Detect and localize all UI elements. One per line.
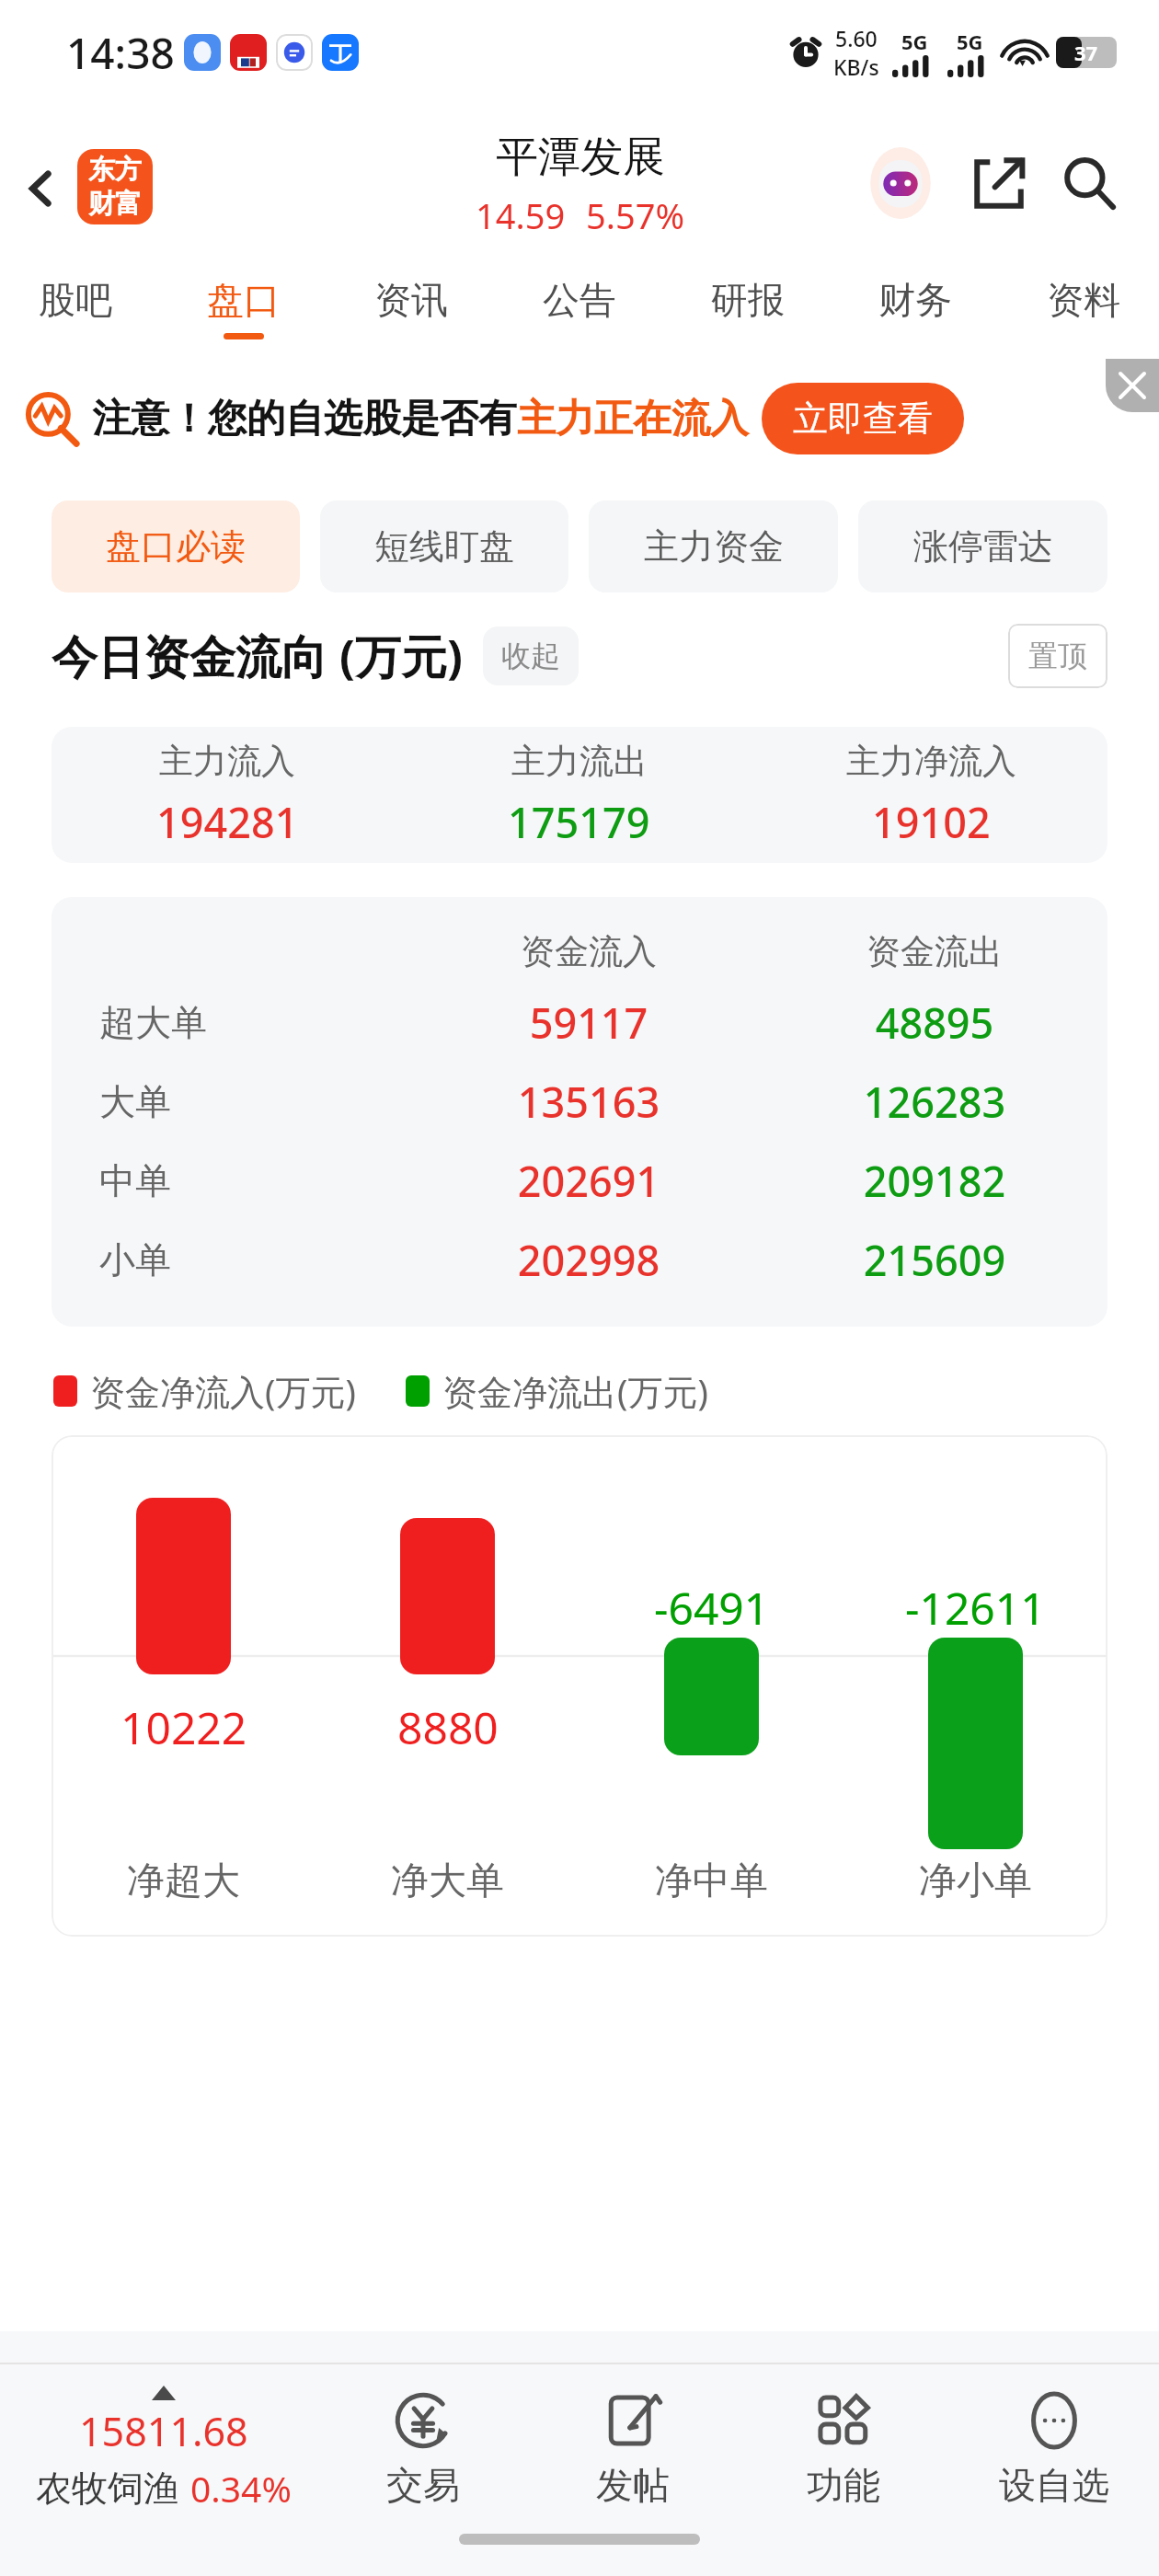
- button[interactable]: 公告: [535, 271, 624, 345]
- staticText: -6491: [654, 1578, 770, 1638]
- staticText: 59117: [416, 995, 762, 1051]
- staticText: 注意！您的自选股是否有: [92, 395, 517, 443]
- button[interactable]: 股吧: [31, 271, 120, 345]
- staticText: 股吧: [39, 277, 112, 323]
- button[interactable]: 注意！您的自选股是否有: [26, 359, 1144, 478]
- button[interactable]: 主力资金: [589, 500, 838, 592]
- staticText: 设自选: [999, 2462, 1109, 2508]
- button[interactable]: Close: [1106, 359, 1159, 412]
- button[interactable]: 发帖: [528, 2364, 738, 2534]
- staticText: 37: [1074, 39, 1098, 66]
- button[interactable]: 研报: [704, 271, 792, 345]
- staticText: 5.57%: [586, 191, 684, 239]
- staticText: 盘口必读: [106, 524, 246, 569]
- staticText: 农牧饲渔: [36, 2466, 179, 2511]
- staticText: 资金流出: [762, 930, 1107, 973]
- staticText: 资金流入: [416, 930, 762, 973]
- staticText: 0.34%: [190, 2464, 292, 2513]
- staticText: 5.60: [835, 24, 878, 52]
- staticText: 今日资金流向 (万元): [52, 625, 463, 687]
- staticText: 8880: [397, 1697, 499, 1757]
- staticText: 10222: [120, 1697, 247, 1757]
- staticText: 功能: [807, 2462, 880, 2508]
- staticText: 202998: [416, 1232, 762, 1288]
- staticText: 财富: [88, 187, 142, 221]
- button[interactable]: 收起: [483, 627, 579, 685]
- staticText: 15811.68: [79, 2404, 248, 2458]
- button[interactable]: 财务: [871, 271, 959, 345]
- button[interactable]: 功能: [738, 2364, 948, 2534]
- staticText: 资讯: [374, 277, 448, 323]
- button[interactable]: AI assistant: [861, 144, 940, 223]
- staticText: 主力净流入: [846, 740, 1016, 783]
- button[interactable]: 资金流入: [52, 897, 1107, 1327]
- button[interactable]: 资讯: [367, 271, 455, 345]
- staticText: 资料: [1047, 277, 1120, 323]
- button[interactable]: 15811.68: [0, 2386, 318, 2513]
- staticText: KB/s: [833, 52, 879, 81]
- staticText: 主力流出: [511, 740, 648, 783]
- button[interactable]: 立即查看: [762, 383, 964, 454]
- staticText: 交易: [386, 2462, 460, 2508]
- staticText: 5G: [901, 28, 928, 55]
- staticText: 194281: [156, 794, 299, 850]
- staticText: 涨停雷达: [913, 524, 1053, 569]
- staticText: 209182: [762, 1153, 1107, 1209]
- button[interactable]: Share: [962, 146, 1036, 220]
- staticText: 19102: [872, 794, 991, 850]
- staticText: 立即查看: [793, 397, 933, 441]
- staticText: 置顶: [1028, 638, 1087, 674]
- staticText: 175179: [508, 794, 650, 850]
- staticText: 公告: [543, 277, 616, 323]
- staticText: 135163: [416, 1074, 762, 1130]
- staticText: 14:38: [66, 24, 175, 82]
- staticText: 215609: [762, 1232, 1107, 1288]
- staticText: 平潭发展: [496, 131, 665, 184]
- button[interactable]: 涨停雷达: [858, 500, 1107, 592]
- staticText: -12611: [905, 1578, 1046, 1638]
- staticText: 5G: [957, 28, 983, 55]
- staticText: 14.59: [476, 191, 566, 239]
- staticText: 短线盯盘: [374, 524, 514, 569]
- button[interactable]: 交易: [318, 2364, 528, 2534]
- button[interactable]: 短线盯盘: [320, 500, 568, 592]
- staticText: 小单: [99, 1237, 171, 1282]
- staticText: 主力正在流入: [517, 395, 749, 443]
- staticText: 主力流入: [159, 740, 295, 783]
- button[interactable]: Search: [1052, 146, 1126, 220]
- staticText: 126283: [762, 1074, 1107, 1130]
- staticText: 盘口: [207, 277, 281, 323]
- staticText: 资金净流入(万元): [90, 1367, 356, 1415]
- staticText: 净超大: [52, 1857, 316, 1905]
- staticText: 研报: [711, 277, 785, 323]
- staticText: 净小单: [843, 1857, 1107, 1905]
- staticText: 48895: [762, 995, 1107, 1051]
- staticText: 202691: [416, 1153, 762, 1209]
- button[interactable]: 主力流入: [52, 727, 1107, 863]
- staticText: 净大单: [316, 1857, 579, 1905]
- button[interactable]: 设自选: [948, 2364, 1159, 2534]
- staticText: 资金净流出(万元): [442, 1367, 708, 1415]
- staticText: 财务: [878, 277, 952, 323]
- button[interactable]: 盘口: [200, 271, 288, 345]
- button[interactable]: East Money: [77, 149, 153, 224]
- button[interactable]: 资料: [1039, 271, 1128, 345]
- staticText: 发帖: [596, 2462, 670, 2508]
- staticText: 超大单: [99, 1000, 207, 1045]
- staticText: 大单: [99, 1079, 171, 1124]
- button[interactable]: 10222: [52, 1435, 1107, 1937]
- staticText: 主力资金: [644, 524, 784, 569]
- button[interactable]: 置顶: [1008, 624, 1107, 688]
- staticText: 中单: [99, 1158, 171, 1203]
- button[interactable]: 盘口必读: [52, 500, 300, 592]
- staticText: 收起: [501, 638, 560, 674]
- staticText: 净中单: [579, 1857, 843, 1905]
- staticText: 东方: [88, 153, 142, 187]
- button[interactable]: Back: [9, 156, 74, 221]
